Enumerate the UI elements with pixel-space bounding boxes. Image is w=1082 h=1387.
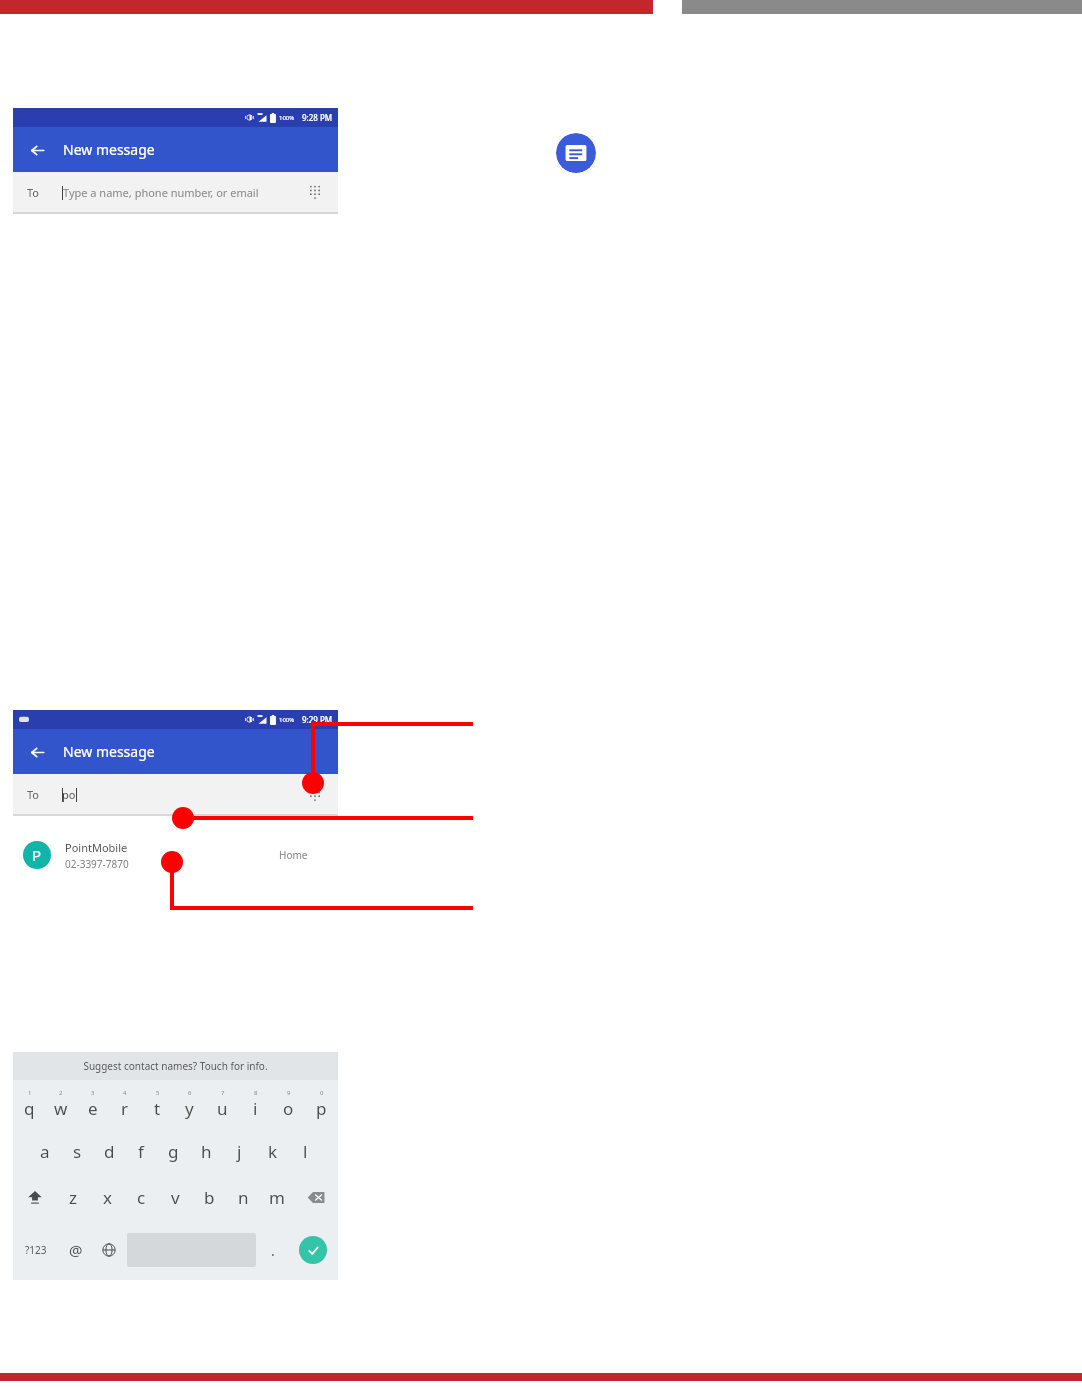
staticText: 2 xyxy=(59,1089,63,1097)
button[interactable]: 1 xyxy=(13,1080,45,1128)
button[interactable]: m xyxy=(260,1174,294,1220)
button[interactable]: Dial pad xyxy=(302,781,328,807)
staticText: Suggest contact names? Touch for info. xyxy=(83,1059,268,1073)
staticText: n xyxy=(238,1186,249,1209)
button[interactable]: 3 xyxy=(77,1080,109,1128)
staticText: 5 xyxy=(156,1089,160,1097)
button[interactable]: ?123 xyxy=(13,1220,59,1280)
button[interactable]: n xyxy=(226,1174,260,1220)
staticText: c xyxy=(137,1186,146,1209)
button[interactable]: 8 xyxy=(239,1080,272,1128)
staticText: P xyxy=(32,845,42,865)
button[interactable]: 2 xyxy=(45,1080,77,1128)
button[interactable]: Suggest contact names? Touch for info. xyxy=(13,1052,338,1080)
staticText: f xyxy=(138,1140,144,1163)
staticText: 9 xyxy=(287,1089,291,1097)
staticText: po xyxy=(62,787,76,802)
button[interactable]: s xyxy=(61,1128,93,1174)
staticText: j xyxy=(237,1140,242,1163)
staticText: e xyxy=(88,1097,98,1120)
staticText: New message xyxy=(63,140,155,159)
staticText: a xyxy=(40,1140,50,1163)
button[interactable]: a xyxy=(29,1128,61,1174)
staticText: r xyxy=(121,1097,129,1120)
button[interactable]: 9 xyxy=(272,1080,305,1128)
staticText: m xyxy=(269,1186,285,1209)
staticText: x xyxy=(103,1186,112,1209)
button[interactable]: Messages app xyxy=(556,133,596,173)
staticText: 6 xyxy=(188,1089,192,1097)
button[interactable]: 5 xyxy=(141,1080,173,1128)
staticText: d xyxy=(104,1140,115,1163)
button[interactable]: z xyxy=(56,1174,90,1220)
staticText: To xyxy=(27,185,40,200)
staticText: h xyxy=(201,1140,212,1163)
staticText: 8 xyxy=(254,1089,258,1097)
staticText: 9:29 PM xyxy=(302,714,333,725)
staticText: y xyxy=(185,1097,194,1120)
staticText: o xyxy=(283,1097,294,1120)
staticText: Type a name, phone number, or email xyxy=(63,185,259,200)
button[interactable]: 4 xyxy=(109,1080,141,1128)
staticText: 0 xyxy=(320,1089,324,1097)
button[interactable]: To xyxy=(13,774,338,814)
button[interactable]: k xyxy=(256,1128,289,1174)
button[interactable]: Dial pad xyxy=(302,179,328,205)
staticText: g xyxy=(168,1140,179,1163)
button[interactable]: c xyxy=(124,1174,158,1220)
staticText: q xyxy=(24,1097,35,1120)
button[interactable]: l xyxy=(289,1128,322,1174)
staticText: 7 xyxy=(221,1089,225,1097)
staticText: 4 xyxy=(123,1089,127,1097)
button[interactable]: Change language xyxy=(92,1220,125,1280)
staticText: w xyxy=(54,1097,68,1120)
staticText: To xyxy=(27,787,40,802)
button[interactable]: v xyxy=(158,1174,192,1220)
button[interactable]: 7 xyxy=(206,1080,239,1128)
button[interactable]: d xyxy=(93,1128,125,1174)
button[interactable]: Back xyxy=(23,136,51,164)
button[interactable]: g xyxy=(157,1128,190,1174)
button[interactable]: 6 xyxy=(173,1080,206,1128)
staticText: b xyxy=(204,1186,215,1209)
button[interactable]: Shift xyxy=(13,1174,56,1220)
staticText: ?123 xyxy=(25,1243,47,1257)
button[interactable]: Enter xyxy=(288,1220,338,1280)
staticText: u xyxy=(217,1097,228,1120)
staticText: @ xyxy=(69,1240,83,1260)
button[interactable]: j xyxy=(223,1128,256,1174)
staticText: p xyxy=(316,1097,327,1120)
staticText: i xyxy=(253,1097,258,1120)
button[interactable]: f xyxy=(125,1128,157,1174)
staticText: l xyxy=(303,1140,308,1163)
button[interactable]: x xyxy=(90,1174,124,1220)
staticText: Home xyxy=(279,848,308,862)
button[interactable]: @ xyxy=(59,1220,92,1280)
staticText: 02-3397-7870 xyxy=(65,857,129,871)
button[interactable]: P xyxy=(13,827,338,883)
staticText: 3 xyxy=(91,1089,95,1097)
staticText: s xyxy=(73,1140,82,1163)
button[interactable]: Back xyxy=(23,738,51,766)
button[interactable]: To xyxy=(13,172,338,212)
staticText: 9:28 PM xyxy=(302,112,333,123)
button[interactable]: Backspace xyxy=(294,1174,338,1220)
staticText: k xyxy=(268,1140,278,1163)
staticText: t xyxy=(154,1097,161,1120)
button[interactable]: . xyxy=(258,1220,288,1280)
staticText: 100% xyxy=(279,114,295,122)
button[interactable]: 0 xyxy=(305,1080,338,1128)
staticText: 100% xyxy=(279,716,295,724)
staticText: z xyxy=(69,1186,77,1209)
button[interactable]: b xyxy=(192,1174,226,1220)
staticText: New message xyxy=(63,742,155,761)
staticText: 1 xyxy=(28,1089,32,1097)
staticText: PointMobile xyxy=(65,840,128,855)
staticText: v xyxy=(171,1186,180,1209)
button[interactable]: h xyxy=(190,1128,223,1174)
staticText: . xyxy=(271,1241,275,1260)
